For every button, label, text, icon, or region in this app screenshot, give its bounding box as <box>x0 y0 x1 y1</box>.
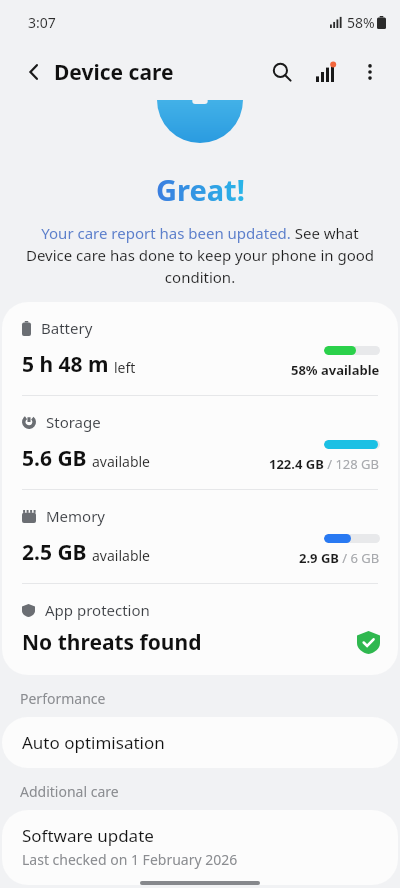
staticText: App protection <box>45 600 150 620</box>
staticText: 2.9 GB / 6 GB <box>299 549 380 567</box>
staticText: Your care report has been updated. See w… <box>24 223 376 288</box>
staticText: 58% available <box>291 361 380 379</box>
staticText: 5.6 GB <box>22 444 87 473</box>
staticText: available <box>92 452 151 471</box>
button[interactable]: Auto optimisation <box>2 717 398 768</box>
staticText: Additional care <box>20 782 119 801</box>
button[interactable]: Software update <box>2 810 398 885</box>
staticText: 2.5 GB <box>22 538 87 567</box>
staticText: Memory <box>46 506 106 526</box>
staticText: 58% <box>347 13 375 32</box>
staticText: 5 h 48 m <box>22 350 109 379</box>
button[interactable]: Storage <box>2 396 398 489</box>
staticText: Device care <box>54 58 174 87</box>
button[interactable]: App protection <box>2 584 398 675</box>
staticText: 122.4 GB / 128 GB <box>269 455 380 473</box>
staticText: Last checked on 1 February 2026 <box>22 850 238 869</box>
button[interactable]: Memory <box>2 490 398 583</box>
staticText: available <box>92 546 151 565</box>
button[interactable]: Search <box>260 50 304 94</box>
button[interactable]: Statistics <box>304 50 348 94</box>
staticText: Great! <box>156 170 245 209</box>
staticText: Performance <box>20 689 106 708</box>
staticText: 3:07 <box>28 13 56 32</box>
button[interactable]: More options <box>348 50 392 94</box>
staticText: No threats found <box>22 628 202 657</box>
staticText: Battery <box>41 318 93 338</box>
staticText: left <box>114 358 136 377</box>
staticText: Storage <box>46 412 101 432</box>
staticText: Auto optimisation <box>22 731 165 754</box>
button[interactable]: Battery <box>2 302 398 395</box>
staticText: Software update <box>22 824 154 847</box>
button[interactable]: Back <box>14 52 54 92</box>
